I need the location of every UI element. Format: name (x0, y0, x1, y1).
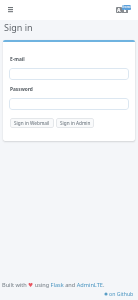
button[interactable]: Translate (116, 7, 122, 13)
staticText: A (117, 7, 121, 13)
staticText: on Github (109, 290, 134, 297)
staticText: Sign in (4, 21, 33, 33)
staticText: Sign in Admin (60, 120, 91, 126)
button[interactable]: Menu (4, 3, 17, 16)
staticText: E-mail (10, 56, 25, 63)
staticText: Sign in Webmail (14, 120, 50, 126)
button[interactable] (9, 98, 129, 110)
button[interactable]: Sign in Webmail (10, 118, 54, 128)
button[interactable]: Sign in Admin (56, 118, 94, 128)
button[interactable]: on Github (104, 290, 134, 297)
button[interactable] (9, 68, 129, 80)
staticText: Password (10, 86, 33, 93)
staticText: Built with ♥ using Flask and AdminLTE. (2, 281, 105, 289)
staticText: Translate (122, 5, 131, 10)
button[interactable]: Extensions (122, 9, 128, 13)
